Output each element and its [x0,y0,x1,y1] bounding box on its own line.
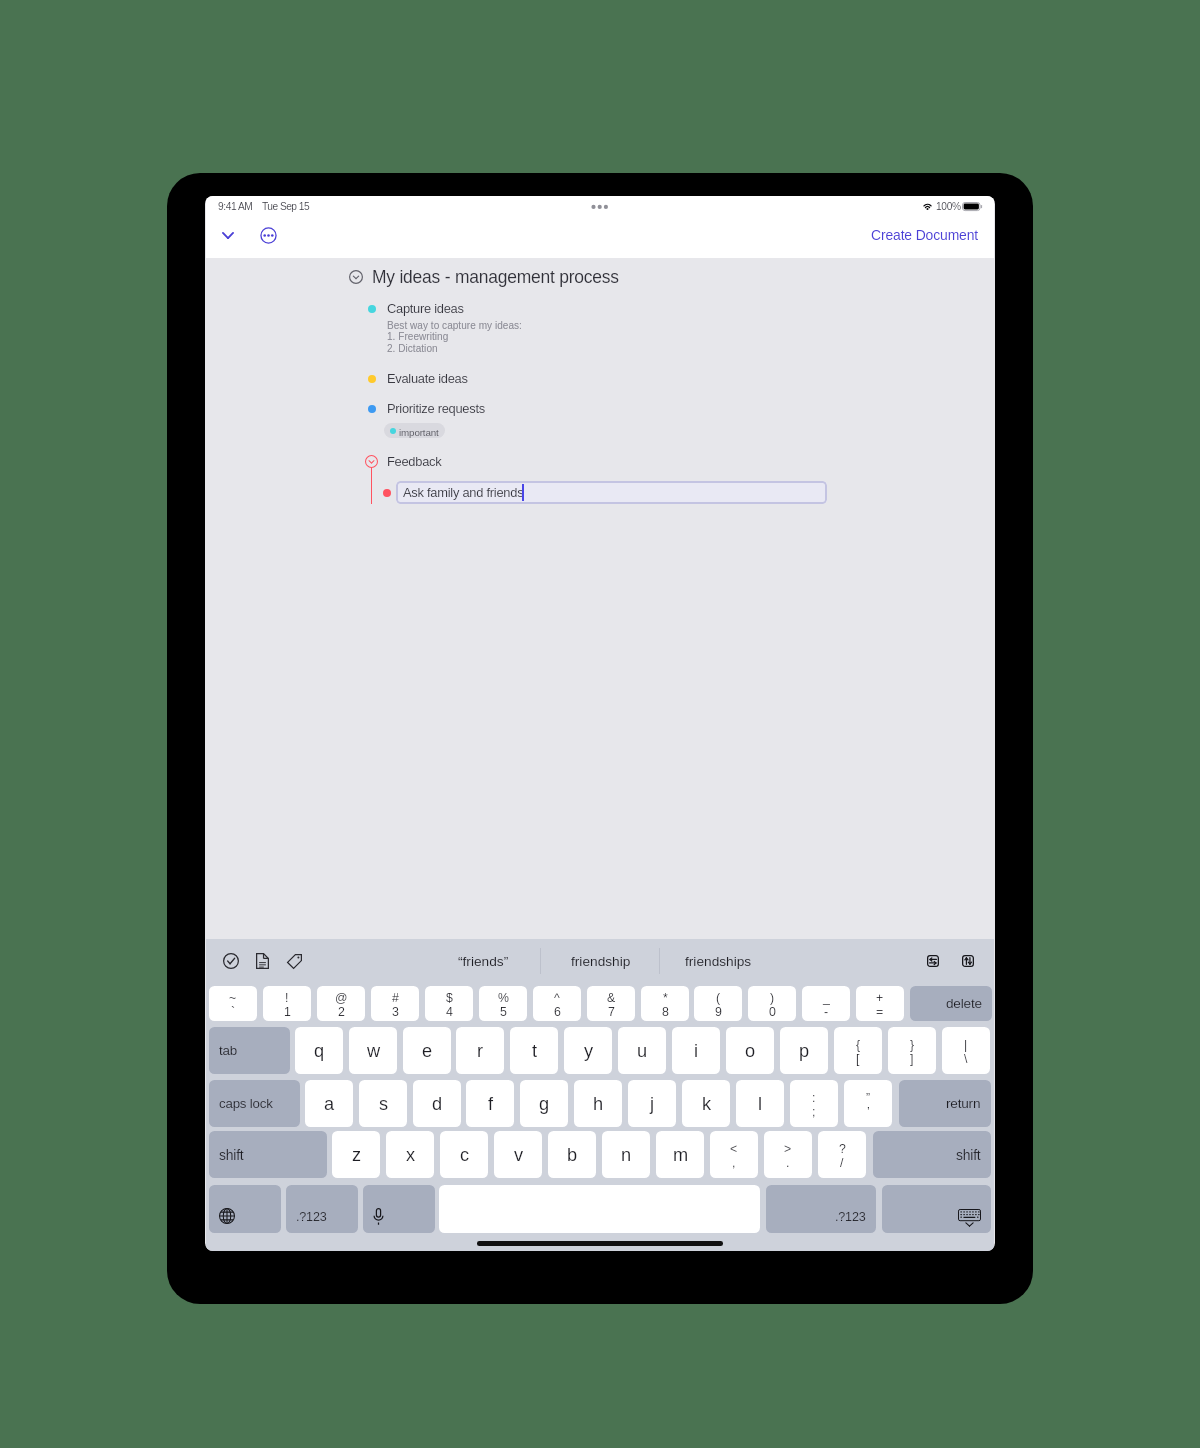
staticText: & [607,991,616,1005]
staticText: n [621,1145,631,1165]
button[interactable]: j [628,1080,676,1127]
button[interactable]: u [618,1027,666,1074]
button[interactable]: shift [873,1131,991,1178]
button[interactable]: w [349,1027,397,1074]
staticText: important [399,427,439,438]
button[interactable]: caps lock [209,1080,300,1127]
button[interactable]: > [764,1131,812,1178]
button[interactable]: Feedback [387,454,442,468]
button[interactable]: ? [818,1131,866,1178]
button[interactable]: important [384,423,445,438]
button[interactable]: | [942,1027,990,1074]
staticText: [ [856,1052,860,1066]
button[interactable]: i [672,1027,720,1074]
button[interactable]: r [456,1027,504,1074]
button[interactable]: ) [748,986,796,1021]
button[interactable]: Capture ideas [360,298,790,319]
button[interactable]: { [834,1027,882,1074]
button[interactable]: Create Document [862,223,988,247]
button[interactable]: delete [910,986,992,1021]
button[interactable]: Split keyboard [923,951,943,971]
button[interactable]: k [682,1080,730,1127]
staticText: ” [866,1091,871,1105]
staticText: Prioritize requests [387,401,485,415]
button[interactable]: f [466,1080,514,1127]
button[interactable]: friendship [545,948,657,974]
button[interactable]: h [574,1080,622,1127]
button[interactable]: _ [802,986,850,1021]
button[interactable]: v [494,1131,542,1178]
button[interactable]: @ [317,986,365,1021]
other: Hide keyboard [958,1209,981,1227]
button[interactable]: tab [209,1027,290,1074]
button[interactable]: Evaluate ideas [360,368,790,389]
button[interactable]: n [602,1131,650,1178]
button[interactable]: $ [425,986,473,1021]
staticText: f [488,1094,493,1114]
button[interactable]: ~ [209,986,257,1021]
staticText: Evaluate ideas [387,371,468,385]
button[interactable]: More options [257,224,279,246]
button[interactable]: ! [263,986,311,1021]
button[interactable]: y [564,1027,612,1074]
staticText: ] [910,1052,914,1066]
button[interactable]: m [656,1131,704,1178]
staticText: w [367,1041,380,1061]
button[interactable]: Tasks [221,951,241,971]
staticText: 7 [608,1005,615,1019]
staticText: Tue Sep 15 [262,201,310,212]
button[interactable]: Collapse [216,223,240,247]
button[interactable]: g [520,1080,568,1127]
button[interactable]: o [726,1027,774,1074]
button[interactable]: z [332,1131,380,1178]
button[interactable]: s [359,1080,407,1127]
button[interactable]: : [790,1080,838,1127]
button[interactable]: Dictation [363,1185,435,1233]
button[interactable]: # [371,986,419,1021]
staticText: ; [812,1105,816,1119]
button[interactable]: % [479,986,527,1021]
button[interactable]: Undock keyboard [958,951,978,971]
button[interactable]: < [710,1131,758,1178]
button[interactable]: p [780,1027,828,1074]
button[interactable]: My ideas - management process [372,267,619,287]
button[interactable]: l [736,1080,784,1127]
button[interactable]: b [548,1131,596,1178]
button[interactable]: “friends” [427,948,539,974]
button[interactable]: t [510,1027,558,1074]
button[interactable]: ^ [533,986,581,1021]
button[interactable]: x [386,1131,434,1178]
button[interactable]: Tags [284,951,304,971]
staticText: .?123 [296,1210,327,1224]
button[interactable]: shift [209,1131,327,1178]
button[interactable]: .?123 [766,1185,876,1233]
button[interactable]: Hide keyboard [882,1185,991,1233]
button[interactable]: q [295,1027,343,1074]
staticText: h [593,1094,603,1114]
button[interactable]: + [856,986,904,1021]
button[interactable]: Change language [209,1185,281,1233]
button[interactable]: d [413,1080,461,1127]
staticText: \ [964,1052,968,1066]
button[interactable]: Prioritize requests [360,398,790,419]
other: Change language [219,1208,235,1224]
staticText: l [758,1094,762,1114]
button[interactable]: e [403,1027,451,1074]
button[interactable]: return [899,1080,991,1127]
button[interactable]: } [888,1027,936,1074]
button[interactable]: & [587,986,635,1021]
button[interactable]: .?123 [286,1185,358,1233]
button[interactable]: ( [694,986,742,1021]
button[interactable]: ” [844,1080,892,1127]
staticText: _ [823,991,830,1005]
button[interactable]: * [641,986,689,1021]
button[interactable]: c [440,1131,488,1178]
button[interactable] [396,481,827,504]
button[interactable]: Document [252,951,272,971]
staticText: return [946,1096,981,1111]
button[interactable]: friendships [662,948,774,974]
button[interactable]: a [305,1080,353,1127]
staticText: friendship [571,954,631,969]
staticText: Best way to capture my ideas: [387,320,522,331]
